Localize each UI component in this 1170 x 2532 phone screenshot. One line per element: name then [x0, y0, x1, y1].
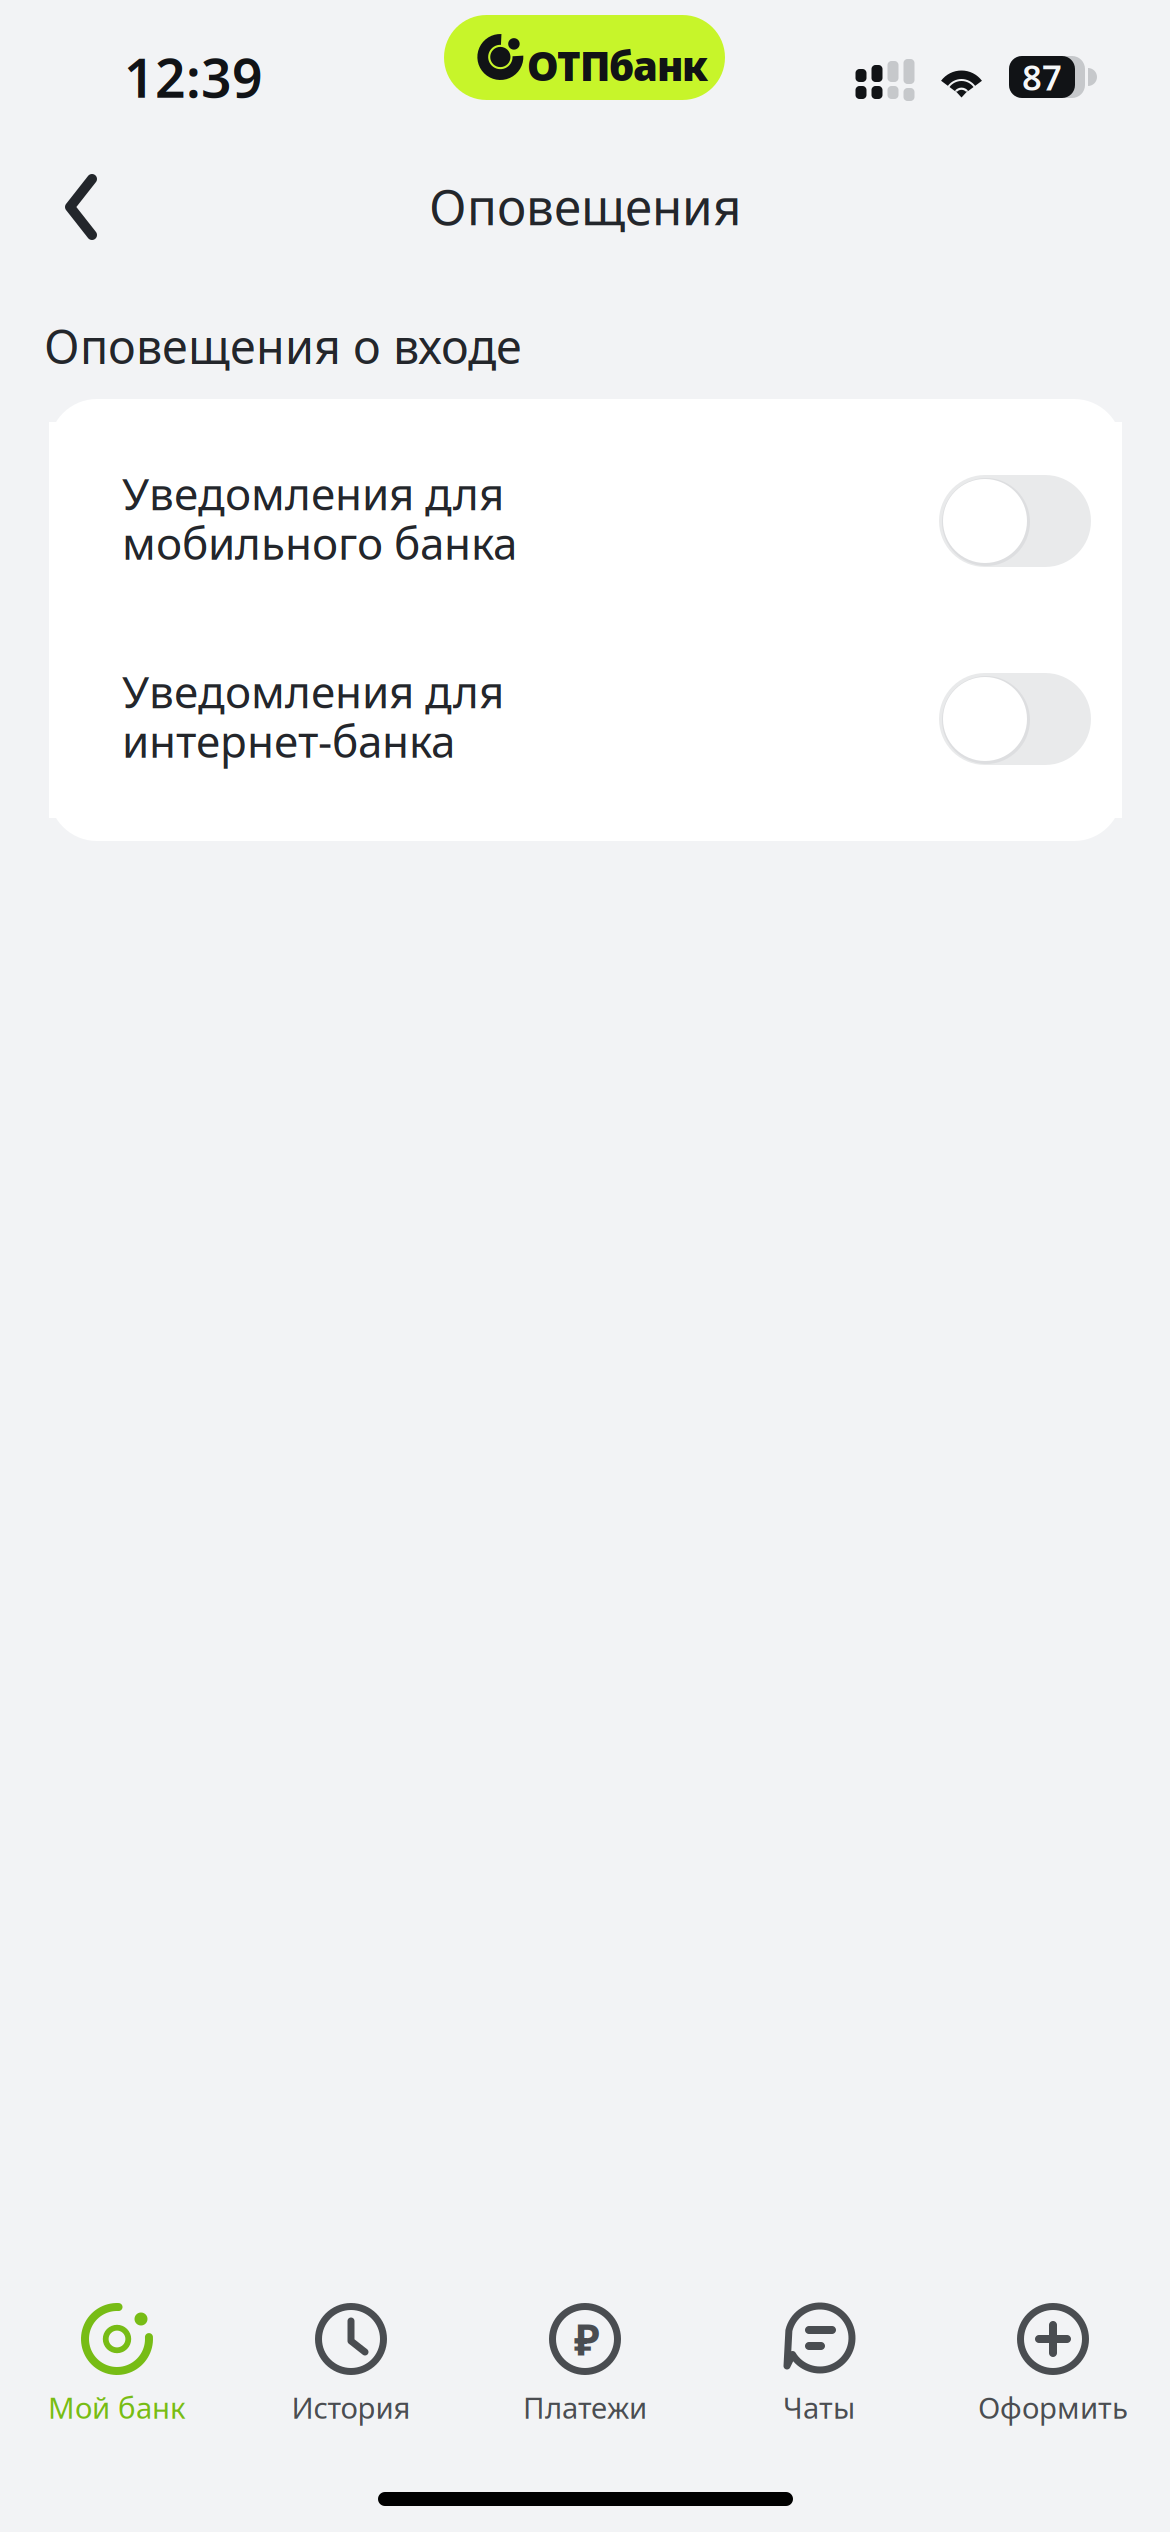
staticText: Платежи: [523, 2388, 647, 2427]
staticText: мобильного банка: [122, 513, 517, 572]
staticText: Уведомления для: [122, 464, 504, 522]
button[interactable]: Чаты: [702, 2300, 936, 2450]
button[interactable]: Мой банк: [0, 2300, 234, 2450]
staticText: Уведомления для: [122, 662, 504, 720]
staticText: Чаты: [783, 2388, 855, 2427]
staticText: ОТПбанк: [527, 39, 708, 92]
button[interactable]: Назад: [0, 121, 138, 243]
button[interactable]: ₽: [468, 2300, 702, 2450]
button[interactable]: Оформить: [936, 2300, 1170, 2450]
staticText: Оповещения о входе: [44, 315, 522, 377]
button[interactable]: Уведомления для: [49, 620, 1122, 818]
staticText: ₽: [574, 2311, 600, 2367]
staticText: История: [291, 2388, 410, 2427]
staticText: Оповещения: [429, 173, 741, 239]
staticText: Мой банк: [48, 2388, 186, 2427]
staticText: 87: [1022, 54, 1062, 100]
staticText: интернет-банка: [122, 711, 455, 770]
button[interactable]: История: [234, 2300, 468, 2450]
button[interactable]: Уведомления для: [49, 422, 1122, 620]
staticText: Оформить: [978, 2388, 1128, 2427]
staticText: 12:39: [124, 42, 263, 112]
